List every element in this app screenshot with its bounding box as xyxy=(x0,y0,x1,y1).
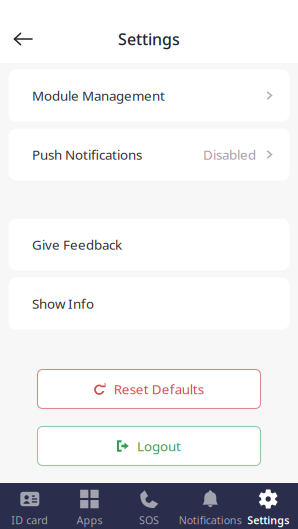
button[interactable]: Module Management xyxy=(8,69,289,121)
staticText: Notifications xyxy=(179,513,242,527)
button[interactable]: Push Notifications xyxy=(8,128,289,180)
button[interactable]: Give Feedback xyxy=(8,218,289,270)
staticText: Push Notifications xyxy=(32,146,142,163)
button[interactable]: Notifications xyxy=(179,483,238,529)
button[interactable]: Reset Defaults xyxy=(37,369,260,408)
staticText: Give Feedback xyxy=(32,236,122,253)
button[interactable]: ID card xyxy=(0,483,60,529)
button[interactable]: Settings xyxy=(238,483,298,529)
staticText: SOS xyxy=(139,513,159,527)
button[interactable]: Back xyxy=(0,22,45,56)
button[interactable]: Apps xyxy=(60,483,119,529)
staticText: ID card xyxy=(11,513,48,527)
staticText: Show Info xyxy=(32,295,94,312)
button[interactable]: Show Info xyxy=(8,277,289,329)
staticText: Disabled xyxy=(203,146,256,163)
staticText: Reset Defaults xyxy=(114,380,204,398)
staticText: Apps xyxy=(76,513,102,527)
staticText: Settings xyxy=(118,28,180,50)
staticText: Logout xyxy=(137,437,181,455)
button[interactable]: Logout xyxy=(37,426,260,465)
button[interactable]: SOS xyxy=(119,483,179,529)
staticText: Settings xyxy=(247,513,289,527)
staticText: Module Management xyxy=(32,87,165,104)
